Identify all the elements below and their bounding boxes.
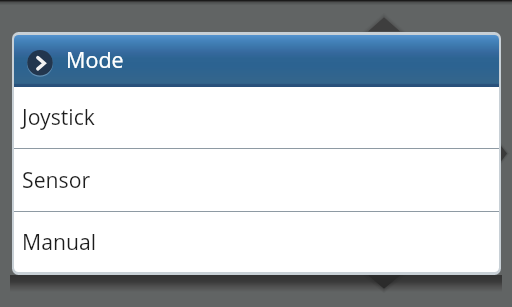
other: Mode — [27, 50, 53, 76]
button[interactable]: Joystick — [14, 87, 499, 148]
staticText: Sensor — [22, 165, 91, 194]
staticText: Joystick — [22, 102, 95, 131]
staticText: Manual — [22, 227, 97, 256]
button[interactable]: Mode — [14, 35, 499, 87]
button[interactable]: Sensor — [14, 149, 499, 211]
staticText: Mode — [66, 45, 124, 74]
button[interactable]: Manual — [14, 212, 499, 272]
